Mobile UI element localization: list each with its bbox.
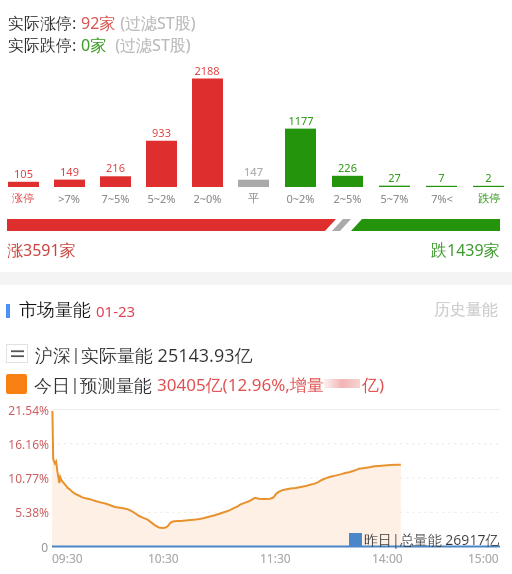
staticText: 涨停 <box>12 191 34 205</box>
staticText: 2188 <box>194 63 220 78</box>
staticText: 226 <box>338 160 357 175</box>
staticText: 0家 <box>81 34 107 56</box>
staticText: >7% <box>58 191 80 206</box>
staticText: 30405亿(12.96%,增量 <box>157 373 324 394</box>
button[interactable]: 切换市场 <box>6 344 28 363</box>
staticText: 7 <box>438 170 445 185</box>
button[interactable]: 历史量能 <box>434 300 498 320</box>
staticText: 92家 <box>81 12 116 34</box>
staticText: 11:30 <box>260 550 291 566</box>
staticText: 0~2% <box>286 191 315 206</box>
staticText: 亿) <box>362 373 385 394</box>
staticText: 27 <box>388 170 401 185</box>
staticText: 147 <box>244 164 263 179</box>
staticText: 5~7% <box>380 191 409 206</box>
staticText: 1177 <box>288 113 314 128</box>
staticText: 沪深|实际量能 25143.93亿 <box>35 343 253 364</box>
staticText: 21.54% <box>0 402 49 418</box>
staticText: 10.77% <box>0 470 49 486</box>
staticText: 实际跌停: <box>8 34 81 56</box>
staticText: 今日|预测量能 <box>34 373 157 394</box>
staticText: 01-23 <box>96 301 136 321</box>
staticText: 933 <box>152 125 171 140</box>
staticText: 09:30 <box>52 550 83 566</box>
staticText: 市场量能 <box>19 299 91 322</box>
staticText: 2 <box>485 170 492 185</box>
staticText: 7~5% <box>101 191 130 206</box>
staticText: (过滤ST股) <box>107 34 191 56</box>
staticText: 5.38% <box>0 504 49 520</box>
staticText: 149 <box>60 164 79 179</box>
staticText: 5~2% <box>147 191 176 206</box>
staticText: 105 <box>14 166 33 181</box>
staticText: 15:00 <box>468 550 499 566</box>
staticText: 2~0% <box>193 191 222 206</box>
staticText: 实际涨停: <box>8 12 81 34</box>
staticText: 历史量能 <box>434 300 498 320</box>
staticText: 2~5% <box>333 191 362 206</box>
staticText: (过滤ST股) <box>116 12 196 34</box>
staticText: 昨日|总量能 26917亿 <box>364 530 500 549</box>
staticText: 16.16% <box>0 436 49 452</box>
staticText: 10:30 <box>148 550 179 566</box>
staticText: 0 <box>0 539 48 555</box>
staticText: 跌停 <box>478 191 500 205</box>
staticText: 14:00 <box>372 550 403 566</box>
staticText: 平 <box>248 191 259 205</box>
staticText: 216 <box>106 160 125 175</box>
staticText: 7%< <box>431 191 453 206</box>
staticText: 涨3591家 <box>7 239 76 261</box>
staticText: 跌1439家 <box>431 239 500 261</box>
